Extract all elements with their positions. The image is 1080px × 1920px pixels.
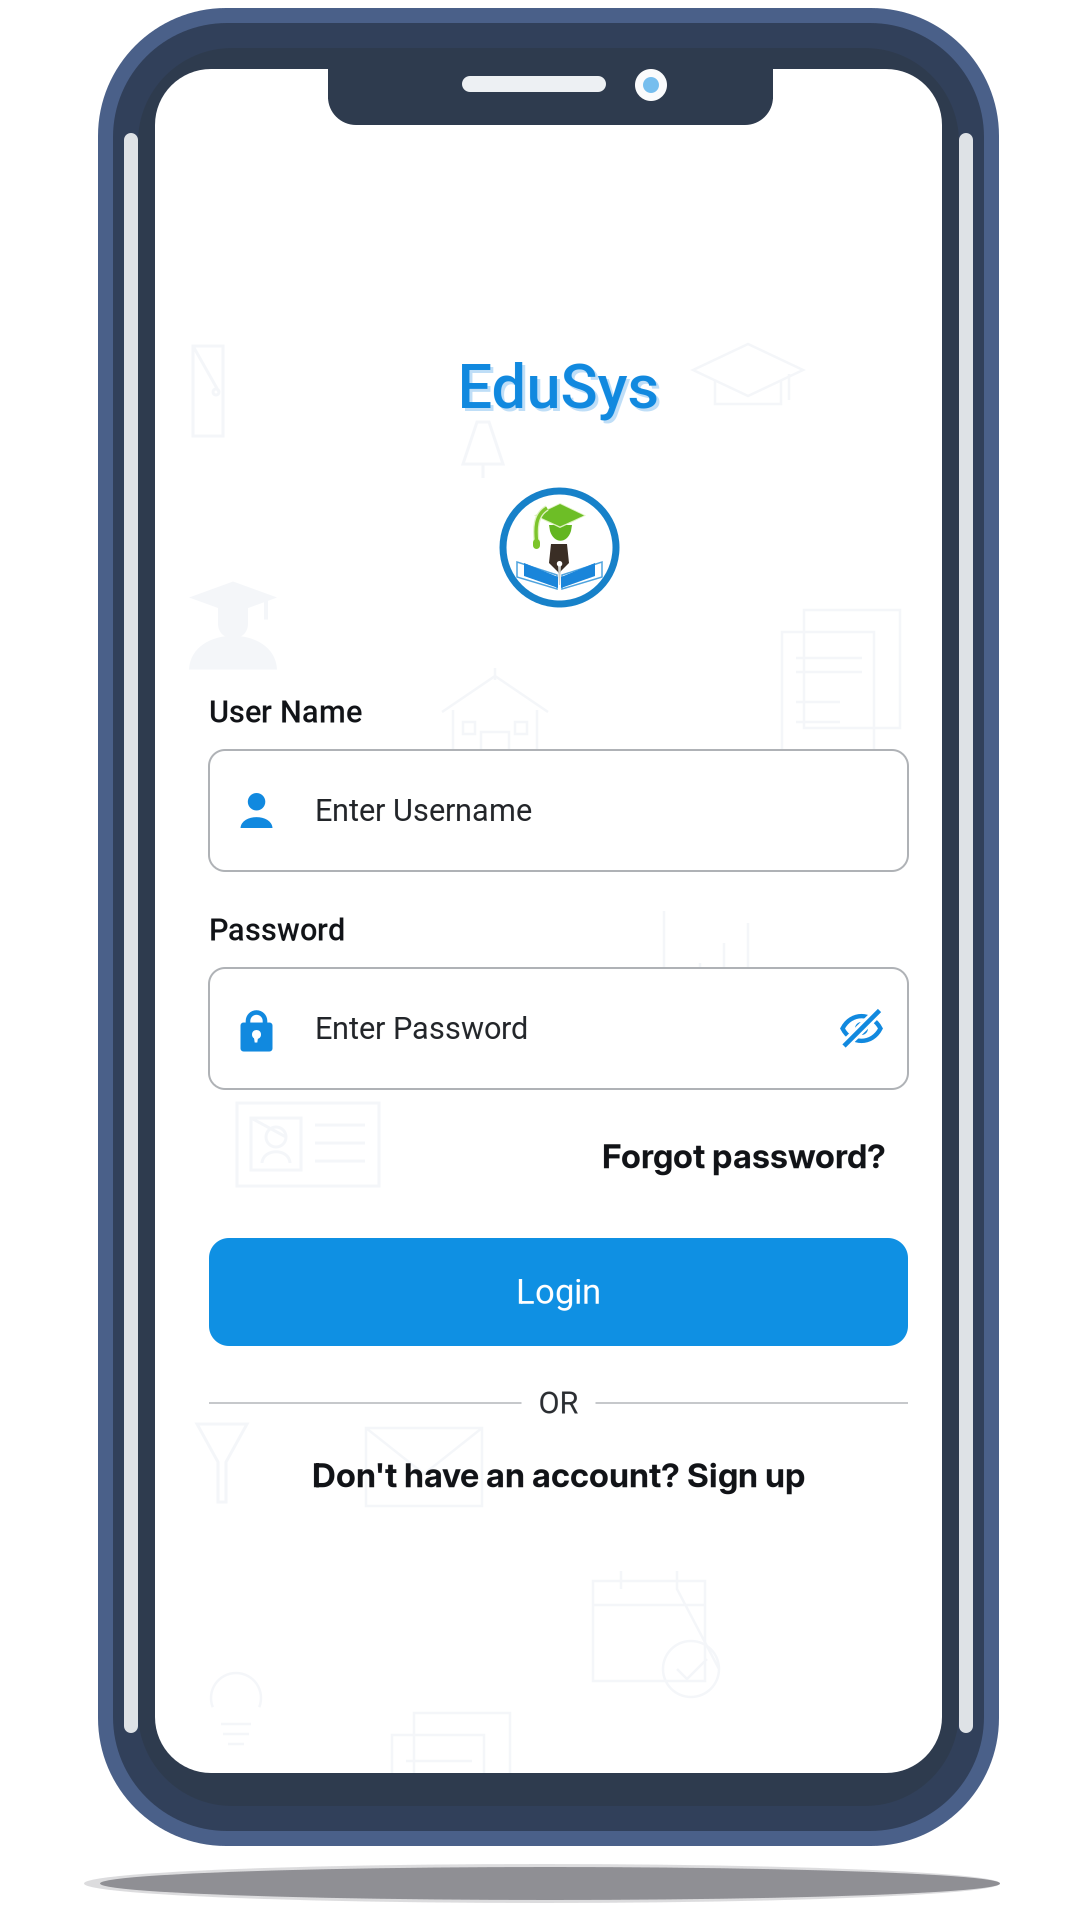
staticText: EduSys	[460, 354, 662, 426]
button[interactable]: Show password	[840, 1008, 883, 1048]
staticText: Don't have an account? Sign up	[312, 1455, 805, 1495]
staticText: Password	[209, 912, 345, 948]
staticText: Enter Password	[315, 1010, 528, 1046]
button[interactable]: Don't have an account? Sign up	[165, 1452, 952, 1498]
staticText: User Name	[209, 694, 362, 730]
staticText: Forgot password?	[602, 1136, 886, 1176]
staticText: EduSys	[457, 351, 659, 423]
staticText: Login	[516, 1272, 601, 1312]
staticText: OR	[538, 1385, 578, 1421]
button[interactable]: Login	[209, 1238, 908, 1346]
button[interactable]: Forgot password?	[209, 1134, 886, 1178]
staticText: Enter Username	[315, 792, 532, 828]
